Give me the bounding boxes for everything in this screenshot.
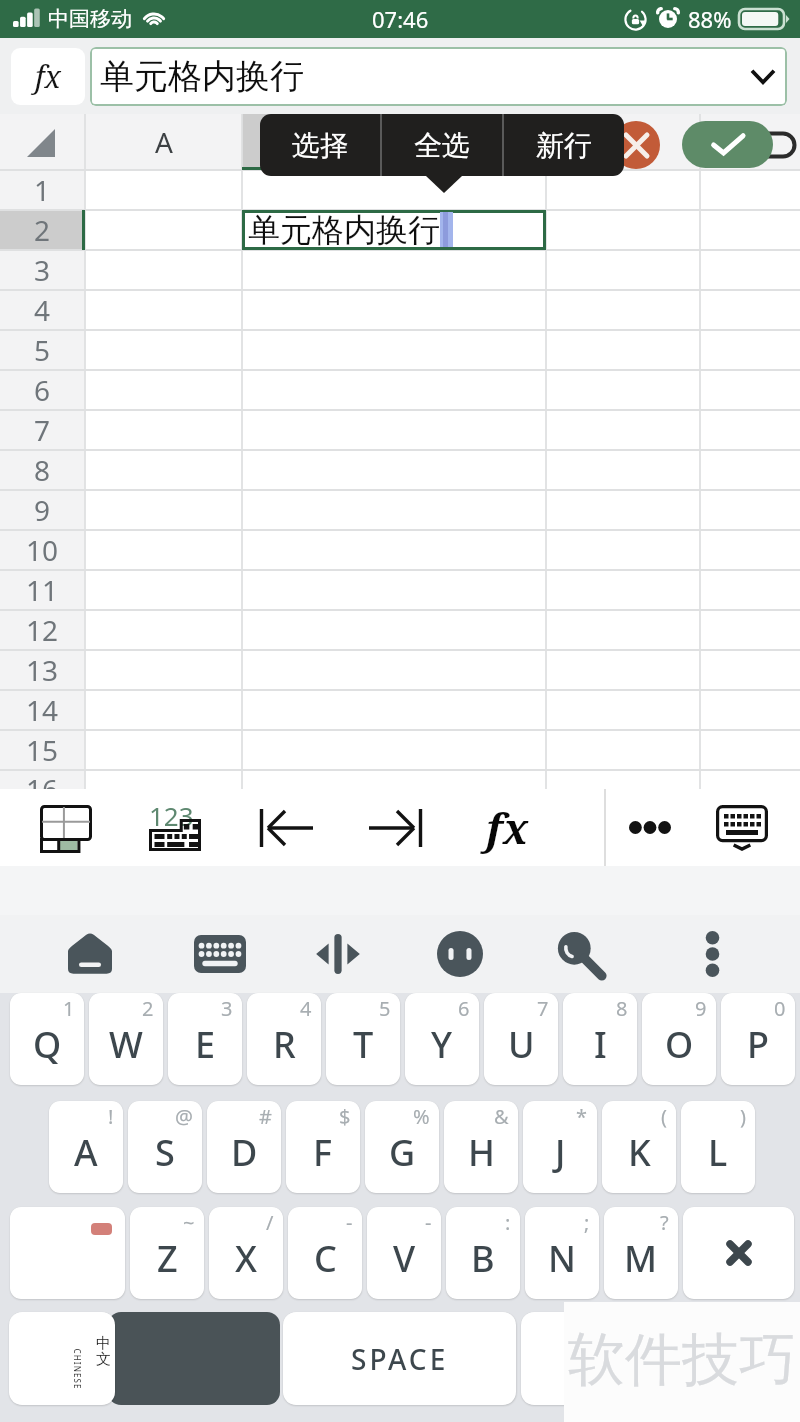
button[interactable]: 新行 — [504, 114, 624, 176]
staticText: : — [505, 1209, 511, 1236]
other: More options — [628, 821, 672, 834]
button[interactable]: Keyboard layout — [188, 915, 252, 993]
button[interactable]: 单元格内换行 — [90, 47, 787, 106]
button[interactable]: ， — [521, 1312, 643, 1405]
button[interactable]: 3 — [168, 993, 242, 1085]
other: Number keypad — [149, 805, 203, 851]
button[interactable]: 0 — [721, 993, 795, 1085]
button[interactable]: & — [444, 1101, 518, 1193]
staticText: 9 — [695, 995, 707, 1022]
button[interactable]: More settings — [680, 915, 744, 993]
button[interactable]: fx — [11, 48, 85, 105]
button[interactable]: Home — [58, 915, 122, 993]
staticText: K — [628, 1128, 651, 1177]
staticText: 单元格内换行 — [248, 210, 440, 250]
staticText: G — [389, 1128, 416, 1177]
button[interactable]: - — [288, 1207, 362, 1299]
staticText: S — [155, 1128, 175, 1177]
button[interactable]: Search — [548, 915, 612, 993]
staticText: fx — [35, 56, 61, 97]
button[interactable]: ! — [49, 1101, 123, 1193]
button[interactable]: Shift — [10, 1207, 125, 1299]
staticText: R — [273, 1020, 296, 1069]
staticText: D — [231, 1128, 258, 1177]
staticText: ( — [661, 1103, 667, 1130]
button[interactable]: * — [523, 1101, 597, 1193]
staticText: A — [74, 1128, 98, 1177]
staticText: 4 — [34, 291, 51, 329]
button[interactable]: Delete — [683, 1207, 794, 1299]
button[interactable]: 4 — [247, 993, 321, 1085]
button[interactable]: 9 — [642, 993, 716, 1085]
staticText: 9 — [34, 491, 51, 529]
button[interactable]: $ — [286, 1101, 360, 1193]
staticText: E — [195, 1020, 216, 1069]
staticText: O — [665, 1020, 694, 1069]
button[interactable]: Number keypad — [121, 789, 231, 866]
other: Functions — [486, 799, 529, 856]
button[interactable]: Functions — [451, 789, 563, 866]
staticText: % — [413, 1103, 430, 1130]
staticText: $ — [339, 1103, 351, 1130]
staticText: 12 — [26, 611, 59, 649]
button[interactable]: % — [365, 1101, 439, 1193]
staticText: C — [314, 1234, 337, 1283]
staticText: P — [747, 1020, 769, 1069]
button[interactable]: More options — [606, 789, 694, 866]
button[interactable]: Table — [5, 789, 126, 866]
other: Expand formula bar — [751, 69, 775, 84]
button[interactable]: # — [207, 1101, 281, 1193]
staticText: 5 — [379, 995, 391, 1022]
button[interactable]: Cancel — [612, 121, 660, 169]
button[interactable]: Emoji — [428, 915, 492, 993]
button[interactable]: : — [446, 1207, 520, 1299]
button[interactable]: ) — [681, 1101, 755, 1193]
button[interactable]: 8 — [563, 993, 637, 1085]
staticText: 新行 — [536, 128, 592, 163]
staticText: 16 — [26, 770, 59, 789]
button[interactable]: 7 — [484, 993, 558, 1085]
staticText: 8 — [616, 995, 628, 1022]
staticText: 0 — [774, 995, 786, 1022]
button[interactable]: ; — [525, 1207, 599, 1299]
button[interactable]: 选择 — [260, 114, 380, 176]
staticText: V — [393, 1234, 416, 1283]
button[interactable]: Enter — [648, 1312, 791, 1405]
button[interactable]: Chinese input — [9, 1312, 115, 1405]
staticText: W — [109, 1020, 143, 1069]
staticText: 7 — [34, 411, 51, 449]
button[interactable]: ( — [602, 1101, 676, 1193]
staticText: B — [471, 1234, 495, 1283]
button[interactable]: 1 — [10, 993, 84, 1085]
staticText: ; — [584, 1209, 590, 1236]
button[interactable]: ? — [604, 1207, 678, 1299]
button[interactable]: 全选 — [382, 114, 502, 176]
staticText: ~ — [183, 1209, 195, 1236]
staticText: Y — [431, 1020, 453, 1069]
button[interactable]: Hide keyboard — [694, 789, 790, 866]
staticText: ! — [108, 1103, 114, 1130]
button[interactable]: 5 — [326, 993, 400, 1085]
staticText: - — [346, 1209, 353, 1236]
button[interactable]: 6 — [405, 993, 479, 1085]
button[interactable]: Confirm — [682, 121, 773, 168]
button[interactable]: @ — [128, 1101, 202, 1193]
staticText: 10 — [26, 531, 59, 569]
staticText: 88% — [688, 4, 732, 34]
button[interactable]: Next cell — [341, 789, 451, 866]
button[interactable]: / — [209, 1207, 283, 1299]
button[interactable]: SPACE — [283, 1312, 516, 1405]
staticText: CHINESE — [71, 1348, 82, 1390]
button[interactable]: Previous cell — [231, 789, 341, 866]
staticText: ， — [567, 1340, 597, 1378]
button[interactable]: ~ — [130, 1207, 204, 1299]
staticText: 2 — [142, 995, 154, 1022]
button[interactable]: - — [367, 1207, 441, 1299]
button[interactable]: 2 — [89, 993, 163, 1085]
staticText: 全选 — [414, 128, 470, 163]
staticText: 1 — [34, 171, 51, 209]
button[interactable]: One-hand mode — [306, 915, 370, 993]
button[interactable]: Symbols — [108, 1312, 280, 1405]
staticText: 软件技巧 — [568, 1324, 796, 1396]
staticText: 07:46 — [372, 4, 429, 34]
